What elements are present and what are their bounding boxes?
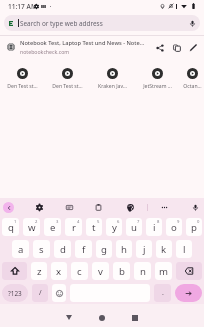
button[interactable]: Den Test st... <box>45 68 90 90</box>
button[interactable]: Kraken Jav... <box>90 68 135 90</box>
staticText: Notebook Test, Laptop Test und News - No… <box>20 39 145 47</box>
staticText: 5 <box>97 219 100 225</box>
staticText: f <box>82 243 86 256</box>
button[interactable]: d <box>54 240 71 258</box>
button[interactable]: Octan... <box>180 68 204 90</box>
staticText: 3 <box>56 219 59 225</box>
button[interactable]: Notebook Test, Laptop Test und News - No… <box>0 36 204 58</box>
button[interactable]: Back <box>61 306 77 327</box>
button[interactable]: k <box>156 240 172 258</box>
button[interactable]: y <box>106 218 122 236</box>
button[interactable]: Enter <box>175 284 202 302</box>
button[interactable]: Den Test st... <box>0 68 45 90</box>
button[interactable]: w <box>23 218 40 236</box>
other: Voice search <box>189 20 196 27</box>
staticText: n <box>140 265 146 278</box>
staticText: JetStream ... <box>143 83 172 90</box>
button[interactable]: q <box>2 218 19 236</box>
button[interactable]: u <box>126 218 142 236</box>
staticText: y <box>112 221 117 234</box>
staticText: v <box>98 265 103 278</box>
staticText: 4 <box>77 219 80 225</box>
button[interactable]: i <box>146 218 162 236</box>
button[interactable]: . <box>154 284 171 302</box>
staticText: notebookcheck.com <box>20 48 70 55</box>
staticText: e <box>50 221 56 234</box>
button[interactable]: n <box>134 262 151 280</box>
button[interactable]: Home <box>94 306 110 327</box>
staticText: z <box>37 265 42 278</box>
staticText: w <box>28 221 36 234</box>
button[interactable]: Clipboard <box>94 200 102 214</box>
staticText: 9 <box>177 219 180 225</box>
staticText: b <box>119 265 125 278</box>
staticText: a <box>18 243 24 256</box>
staticText: m <box>159 265 168 278</box>
button[interactable]: ?123 <box>2 284 28 302</box>
staticText: r <box>72 221 76 234</box>
staticText: 11:17 AM <box>8 2 37 11</box>
button[interactable]: Copy <box>168 38 185 57</box>
button[interactable]: Edit <box>185 38 202 57</box>
staticText: o <box>171 221 177 234</box>
staticText: 1 <box>14 219 17 225</box>
button[interactable]: Voice input <box>191 200 199 214</box>
staticText: . <box>162 288 164 298</box>
button[interactable]: r <box>65 218 82 236</box>
staticText: k <box>161 243 167 256</box>
staticText: u <box>131 221 137 234</box>
button[interactable]: l <box>176 240 192 258</box>
button[interactable]: s <box>33 240 50 258</box>
staticText: 0 <box>197 219 200 225</box>
staticText: g <box>101 243 107 256</box>
staticText: Den Test st... <box>7 83 38 90</box>
staticText: 2 <box>35 219 38 225</box>
button[interactable]: More <box>160 200 168 214</box>
button[interactable]: Theme <box>126 200 134 214</box>
button[interactable]: Shift <box>2 262 27 280</box>
button[interactable]: Backspace <box>176 262 202 280</box>
button[interactable]: Back <box>3 202 14 213</box>
button[interactable]: Settings <box>35 200 43 214</box>
button[interactable]: e <box>44 218 61 236</box>
button[interactable]: j <box>136 240 152 258</box>
button[interactable]: Search or type web address <box>4 15 200 31</box>
button[interactable]: o <box>166 218 182 236</box>
staticText: Kraken Jav... <box>98 83 127 90</box>
staticText: q <box>8 221 14 234</box>
staticText: / <box>39 288 42 298</box>
button[interactable]: z <box>31 262 47 280</box>
button[interactable]: v <box>92 262 109 280</box>
button[interactable]: JetStream ... <box>135 68 180 90</box>
staticText: t <box>92 221 96 234</box>
staticText: l <box>183 243 186 256</box>
button[interactable]: Share <box>151 38 168 57</box>
staticText: Octan... <box>183 83 202 90</box>
button[interactable]: a <box>12 240 29 258</box>
staticText: j <box>143 243 146 256</box>
staticText: 8 <box>157 219 160 225</box>
button[interactable]: GIF <box>65 200 73 214</box>
staticText: c <box>77 265 82 278</box>
button[interactable]: m <box>155 262 172 280</box>
button[interactable]: Emoji <box>52 284 66 302</box>
button[interactable]: t <box>86 218 102 236</box>
staticText: i <box>153 221 156 234</box>
button[interactable]: Recents <box>127 306 143 327</box>
button[interactable]: / <box>32 284 48 302</box>
staticText: h <box>121 243 127 256</box>
button[interactable]: f <box>75 240 92 258</box>
staticText: Den Test st... <box>52 83 83 90</box>
staticText: ?123 <box>8 289 22 298</box>
button[interactable]: b <box>113 262 130 280</box>
staticText: x <box>56 265 62 278</box>
button[interactable]: x <box>51 262 67 280</box>
staticText: 6 <box>117 219 120 225</box>
button[interactable]: g <box>96 240 112 258</box>
button[interactable]: c <box>71 262 88 280</box>
staticText: Search or type web address <box>20 19 103 28</box>
button[interactable]: p <box>186 218 202 236</box>
button[interactable]: h <box>116 240 132 258</box>
staticText: p <box>191 221 197 234</box>
